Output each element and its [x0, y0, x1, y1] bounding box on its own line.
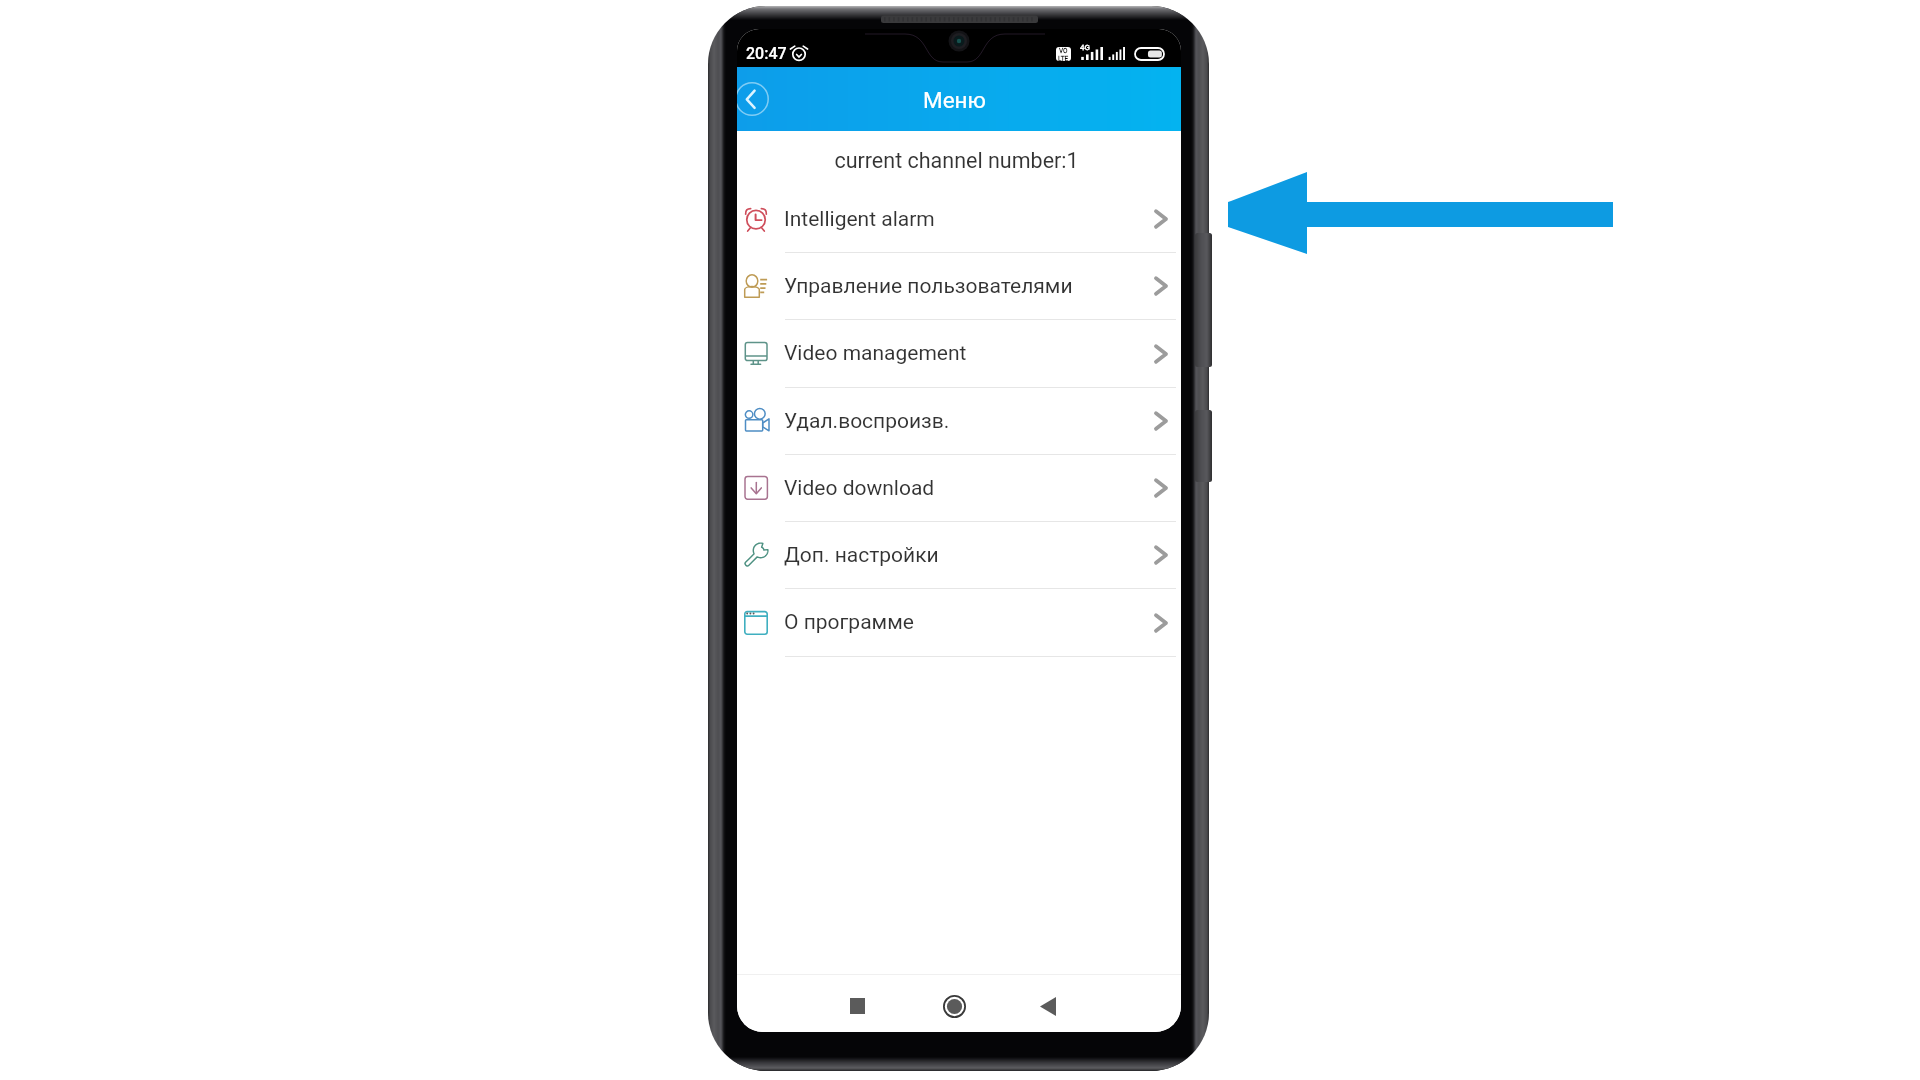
staticText: Intelligent alarm — [784, 207, 935, 232]
staticText: VO — [1059, 47, 1068, 55]
staticText: Управление пользователями — [784, 274, 1073, 299]
staticText: 20:47 — [746, 44, 787, 63]
staticText: Доп. настройки — [784, 543, 939, 568]
button[interactable]: Recents — [835, 984, 879, 1028]
button[interactable]: Доп. настройки — [737, 522, 1181, 589]
staticText: current channel number:1 — [834, 148, 1079, 173]
staticText: Удал.воспроизв. — [784, 409, 950, 434]
button[interactable]: О программе — [737, 589, 1181, 657]
button[interactable]: Home — [932, 984, 976, 1028]
button[interactable]: Удал.воспроизв. — [737, 388, 1181, 455]
button[interactable]: Video management — [737, 320, 1181, 388]
button[interactable]: Back — [737, 77, 774, 121]
button[interactable]: Intelligent alarm — [737, 186, 1181, 253]
button[interactable]: Video download — [737, 455, 1181, 522]
staticText: О программе — [784, 610, 914, 635]
staticText: 4G — [1080, 43, 1090, 52]
staticText: Меню — [923, 87, 986, 113]
staticText: Video download — [784, 476, 935, 501]
button[interactable]: Управление пользователями — [737, 253, 1181, 320]
staticText: Video management — [784, 341, 967, 366]
staticText: LTE — [1058, 55, 1069, 61]
button[interactable]: Back — [1026, 984, 1070, 1028]
